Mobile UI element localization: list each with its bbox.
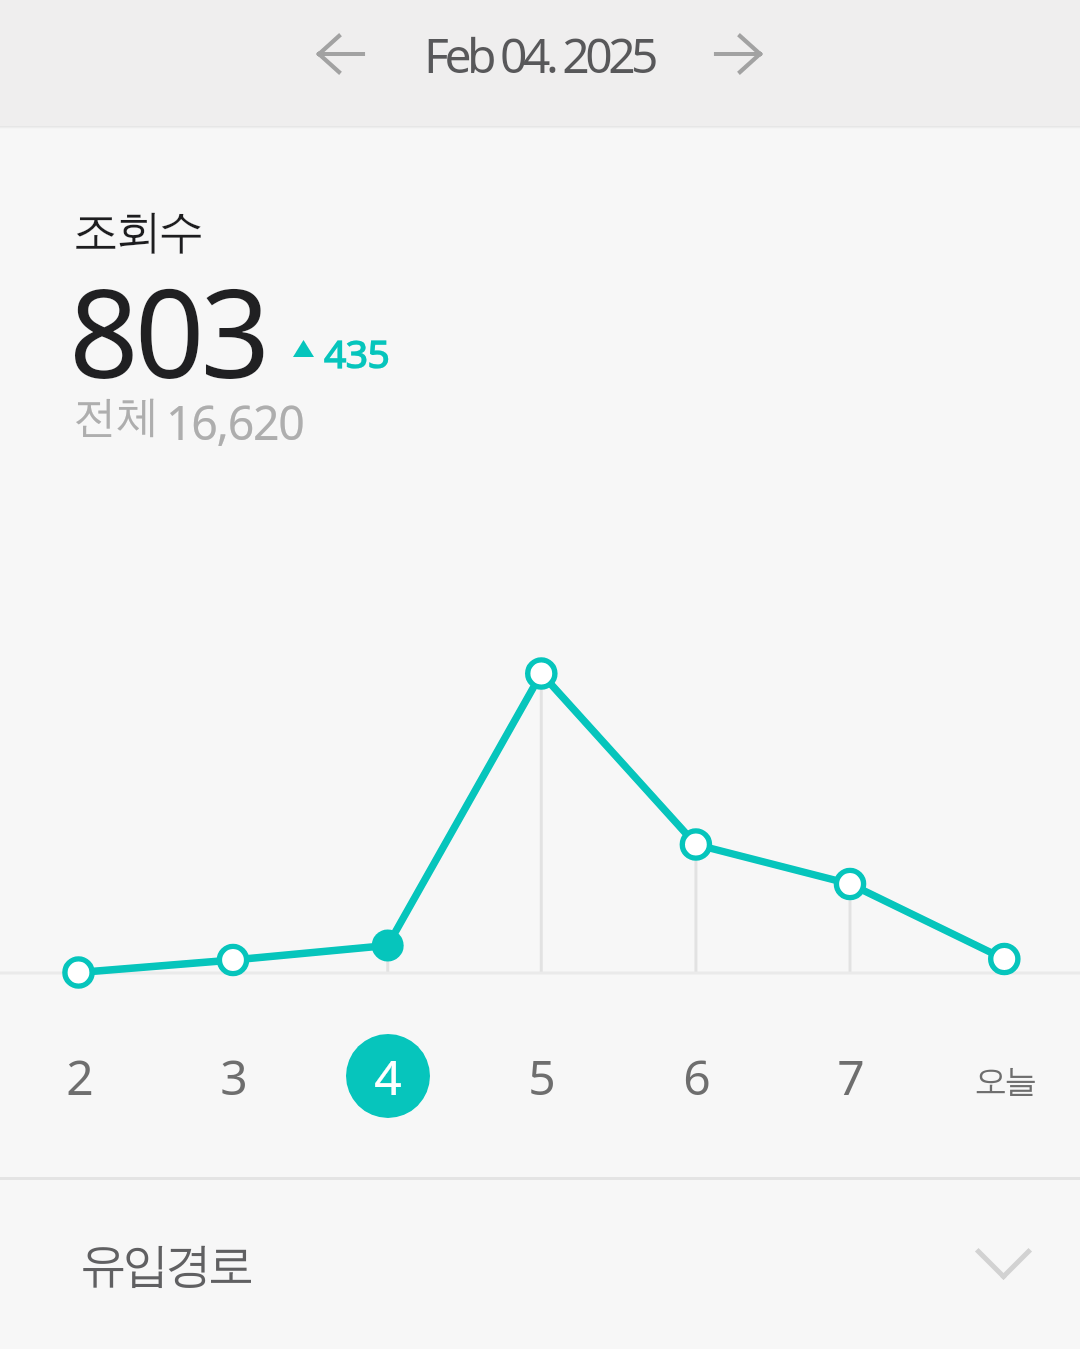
staticText: 조회수 <box>73 203 202 261</box>
other: Expand 유입경로 <box>977 1250 1030 1278</box>
staticText: 2 <box>66 1044 94 1109</box>
staticText: 6 <box>683 1044 711 1109</box>
button[interactable]: 6 <box>636 1034 756 1118</box>
button[interactable]: 7 <box>790 1034 910 1118</box>
button[interactable]: 유입경로 <box>0 1180 1080 1349</box>
staticText: 803 <box>69 248 267 414</box>
button[interactable]: 오늘 <box>944 1034 1064 1118</box>
staticText: 435 <box>324 326 390 379</box>
staticText: 5 <box>528 1044 556 1109</box>
button[interactable]: Previous day <box>292 6 388 102</box>
staticText: 4 <box>374 1044 402 1109</box>
staticText: 7 <box>837 1044 865 1109</box>
staticText: 전체 <box>74 390 159 444</box>
staticText: 유입경로 <box>80 1236 251 1295</box>
button[interactable]: 5 <box>481 1034 601 1118</box>
staticText: 3 <box>220 1044 248 1109</box>
button[interactable]: 4 <box>346 1034 430 1118</box>
staticText: Feb 04. 2025 <box>424 22 655 87</box>
button[interactable]: 3 <box>173 1034 293 1118</box>
button[interactable]: 2 <box>19 1034 139 1118</box>
button[interactable]: Next day <box>690 6 786 102</box>
staticText: 오늘 <box>976 1060 1036 1102</box>
staticText: 16,620 <box>166 390 304 453</box>
